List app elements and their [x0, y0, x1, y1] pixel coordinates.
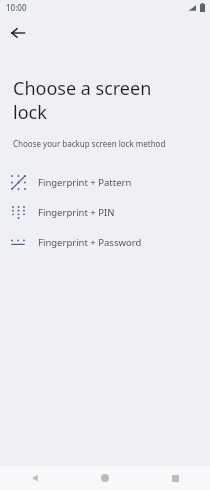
button[interactable]: Recent apps: [140, 466, 210, 490]
button[interactable]: Home: [70, 466, 140, 490]
staticText: Fingerprint + Password: [38, 236, 142, 249]
button[interactable]: Fingerprint + PIN: [0, 197, 210, 227]
button[interactable]: Fingerprint + Pattern: [0, 167, 210, 197]
button[interactable]: Fingerprint + Password: [0, 227, 210, 257]
staticText: Choose your backup screen lock method: [13, 138, 166, 149]
staticText: Choose a screen lock: [13, 76, 163, 124]
staticText: 10:00: [6, 2, 27, 13]
staticText: Fingerprint + Pattern: [38, 176, 132, 189]
button[interactable]: Back: [0, 466, 70, 490]
staticText: Fingerprint + PIN: [38, 206, 115, 219]
button[interactable]: Back: [6, 21, 30, 45]
